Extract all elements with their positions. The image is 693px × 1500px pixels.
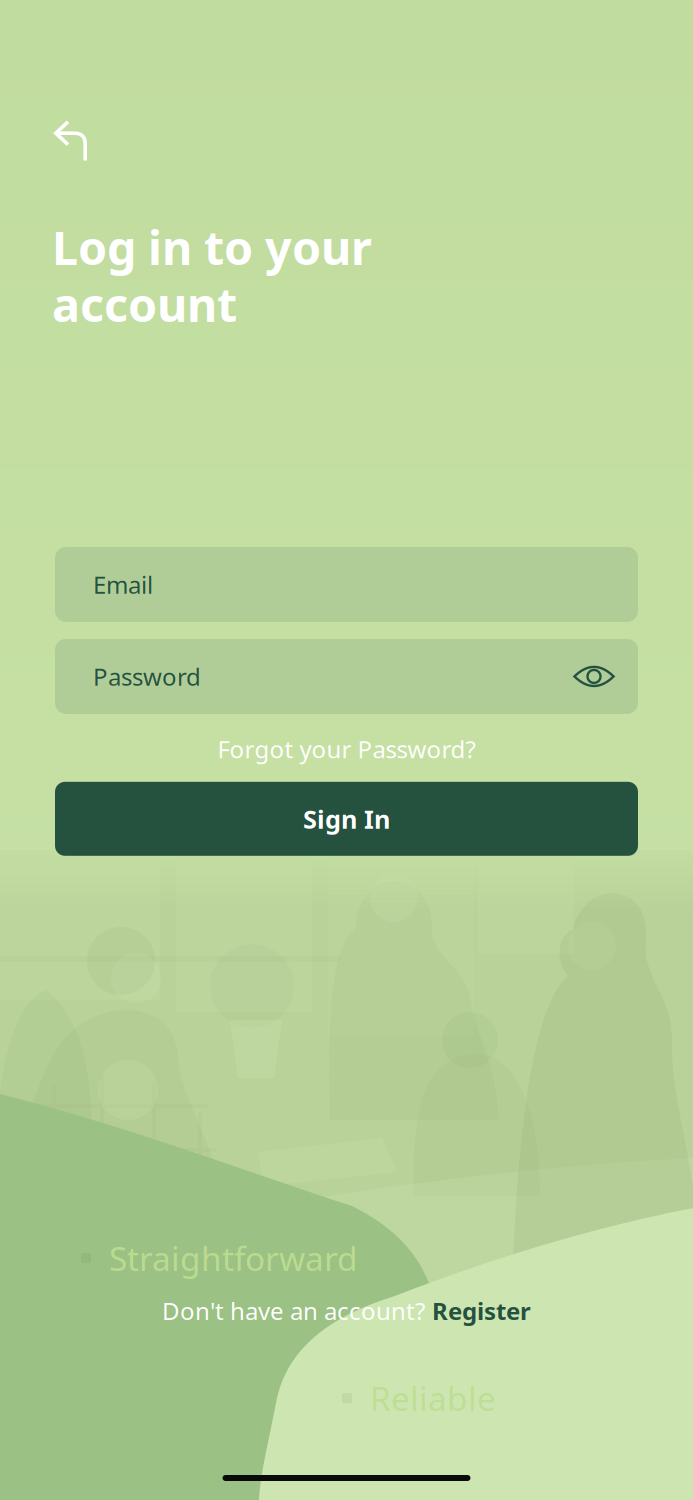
staticText: Don't have an account?: [162, 1295, 425, 1327]
staticText: Password: [93, 660, 201, 692]
staticText: Forgot your Password?: [217, 733, 475, 765]
button[interactable]: Email: [55, 547, 638, 622]
button[interactable]: Show password: [562, 650, 626, 703]
button[interactable]: Back: [0, 0, 103, 176]
staticText: Sign In: [303, 802, 390, 836]
button[interactable]: Forgot your Password?: [197, 714, 495, 782]
button[interactable]: Sign In: [55, 782, 638, 856]
button[interactable]: Password: [55, 639, 535, 714]
staticText: Register: [432, 1295, 531, 1327]
staticText: Log in to your account: [52, 216, 372, 335]
staticText: Reliable: [370, 1376, 496, 1420]
button[interactable]: Don't have an account?: [146, 1287, 547, 1335]
staticText: Straightforward: [109, 1236, 358, 1280]
staticText: Email: [93, 568, 153, 600]
